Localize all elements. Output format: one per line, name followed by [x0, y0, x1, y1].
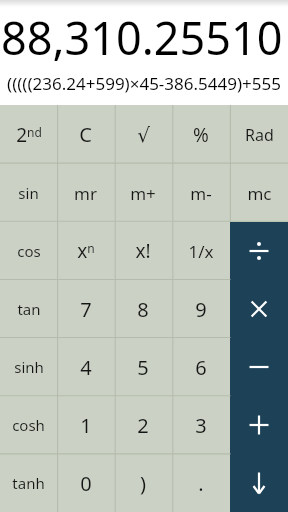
staticText: mc	[247, 182, 272, 205]
button[interactable]: Rad	[230, 105, 288, 164]
staticText: m-	[190, 182, 212, 205]
staticText: 9	[195, 296, 207, 323]
staticText: 8	[137, 296, 149, 323]
staticText: Rad	[245, 124, 274, 146]
staticText: cosh	[12, 415, 45, 435]
staticText: 4	[80, 354, 92, 381]
button[interactable]: cos	[0, 222, 57, 280]
button[interactable]: Add	[230, 396, 288, 454]
staticText: sin	[18, 183, 39, 203]
staticText: 3	[195, 412, 207, 439]
button[interactable]: 5	[114, 338, 172, 396]
button[interactable]: x!	[114, 222, 172, 280]
staticText: √	[137, 123, 150, 146]
button[interactable]: %	[172, 105, 230, 164]
button[interactable]: mc	[230, 164, 288, 222]
button[interactable]: 4	[57, 338, 114, 396]
button[interactable]: 7	[57, 280, 114, 338]
staticText: sinh	[14, 357, 44, 377]
staticText: tanh	[12, 473, 45, 493]
staticText: 2	[137, 412, 149, 439]
button[interactable]: Multiply	[230, 280, 288, 338]
button[interactable]: sinh	[0, 338, 57, 396]
staticText: cos	[17, 241, 41, 261]
staticText: 88,310.25510	[1, 7, 283, 61]
staticText: 1	[80, 412, 92, 439]
button[interactable]: tanh	[0, 454, 57, 512]
button[interactable]: 2	[114, 396, 172, 454]
staticText: .	[198, 470, 204, 497]
staticText: )	[140, 470, 146, 497]
button[interactable]: sin	[0, 164, 57, 222]
staticText: mr	[74, 182, 97, 205]
button[interactable]: √	[114, 105, 172, 164]
button[interactable]: .	[172, 454, 230, 512]
button[interactable]: Subtract	[230, 338, 288, 396]
button[interactable]: 3	[172, 396, 230, 454]
button[interactable]: 9	[172, 280, 230, 338]
staticText: 1/x	[188, 240, 214, 263]
button[interactable]: Enter	[230, 454, 288, 512]
button[interactable]: xn	[57, 222, 114, 280]
button[interactable]: 2nd	[0, 105, 57, 164]
button[interactable]: mr	[57, 164, 114, 222]
button[interactable]: cosh	[0, 396, 57, 454]
button[interactable]: m-	[172, 164, 230, 222]
staticText: 5	[137, 354, 149, 381]
button[interactable]: 8	[114, 280, 172, 338]
staticText: m+	[130, 182, 156, 205]
staticText: tan	[17, 299, 41, 319]
staticText: x!	[135, 238, 151, 264]
button[interactable]: 0	[57, 454, 114, 512]
button[interactable]: C	[57, 105, 114, 164]
staticText: %	[193, 122, 209, 148]
button[interactable]: 6	[172, 338, 230, 396]
button[interactable]: Divide	[230, 222, 288, 280]
staticText: C	[79, 121, 92, 148]
button[interactable]: 1	[57, 396, 114, 454]
staticText: xn	[77, 238, 95, 264]
staticText: 2nd	[16, 122, 42, 148]
button[interactable]: tan	[0, 280, 57, 338]
staticText: 0	[80, 470, 92, 497]
button[interactable]: )	[114, 454, 172, 512]
staticText: 6	[195, 354, 207, 381]
button[interactable]: m+	[114, 164, 172, 222]
staticText: 7	[80, 296, 92, 323]
staticText: (((((236.24+599)×45-386.5449)+555	[7, 72, 281, 95]
button[interactable]: 1/x	[172, 222, 230, 280]
